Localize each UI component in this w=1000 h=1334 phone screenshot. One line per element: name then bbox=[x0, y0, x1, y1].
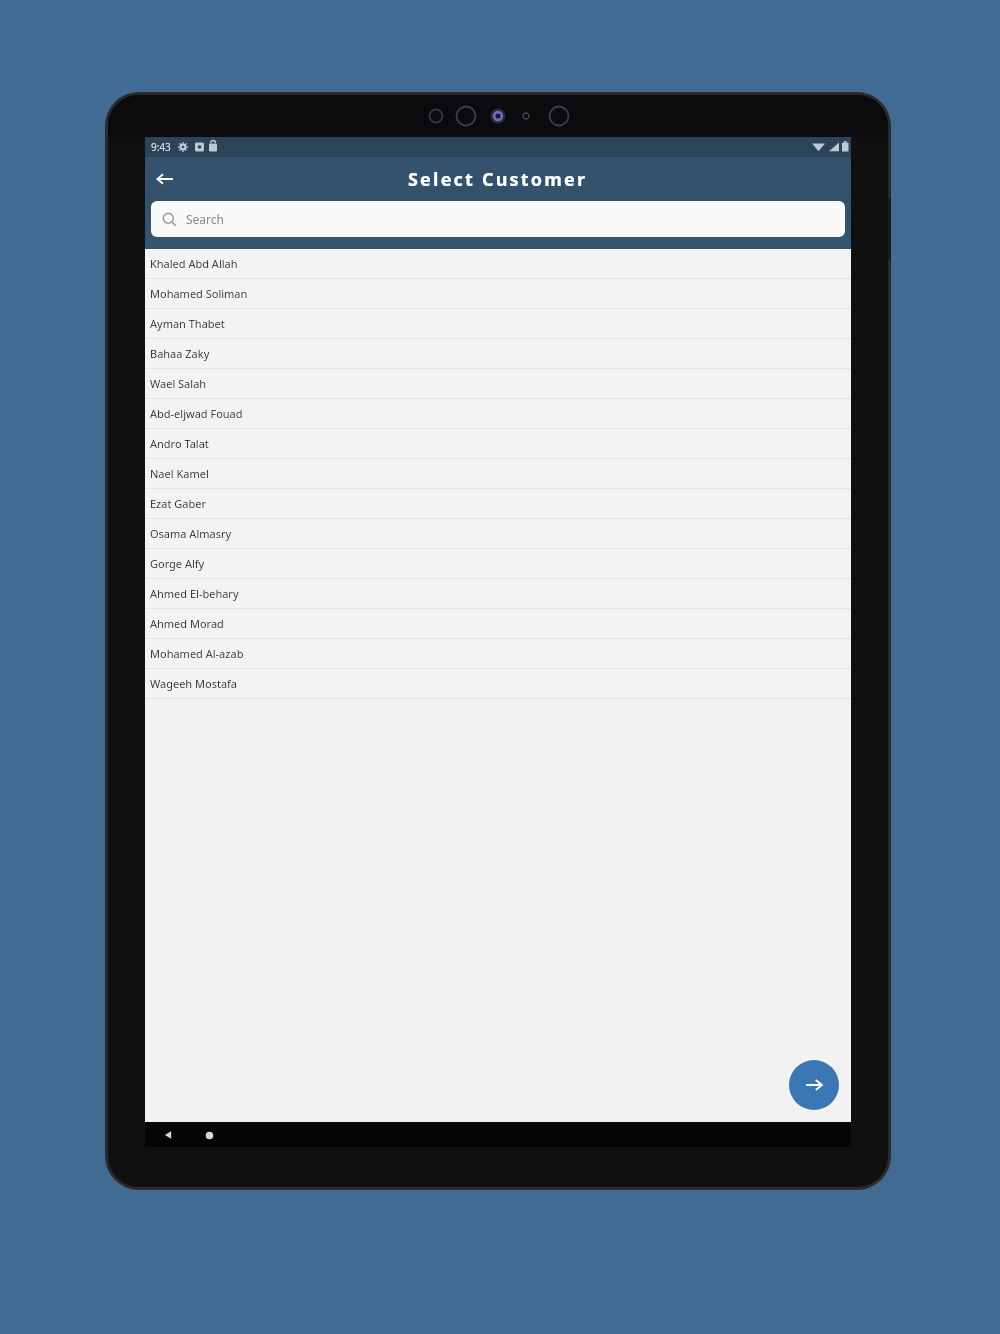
button[interactable]: Khaled Abd Allah bbox=[145, 249, 851, 278]
button[interactable]: Mohamed Soliman bbox=[145, 279, 851, 308]
button[interactable]: Ezat Gaber bbox=[145, 489, 851, 518]
button[interactable]: Abd-eljwad Fouad bbox=[145, 399, 851, 428]
staticText: Ahmed El-behary bbox=[150, 586, 239, 601]
button[interactable]: Ahmed El-behary bbox=[145, 579, 851, 608]
staticText: Nael Kamel bbox=[150, 466, 209, 481]
button[interactable]: Next bbox=[789, 1060, 839, 1110]
button[interactable]: Gorge Alfy bbox=[145, 549, 851, 578]
staticText: 9:43 bbox=[151, 140, 171, 154]
button[interactable]: Ahmed Morad bbox=[145, 609, 851, 638]
button[interactable]: Mohamed Al-azab bbox=[145, 639, 851, 668]
staticText: Wael Salah bbox=[150, 376, 207, 391]
staticText: Ahmed Morad bbox=[150, 616, 224, 631]
button[interactable]: Back bbox=[157, 1124, 179, 1146]
button[interactable]: Back bbox=[145, 159, 185, 199]
staticText: Gorge Alfy bbox=[150, 556, 205, 571]
staticText: Khaled Abd Allah bbox=[150, 256, 238, 271]
button[interactable]: Wageeh Mostafa bbox=[145, 669, 851, 698]
staticText: Mohamed Soliman bbox=[150, 286, 248, 301]
staticText: Mohamed Al-azab bbox=[150, 646, 244, 661]
staticText: Osama Almasry bbox=[150, 526, 232, 541]
staticText: Search bbox=[186, 211, 224, 227]
button[interactable]: Search bbox=[151, 201, 845, 237]
button[interactable]: Bahaa Zaky bbox=[145, 339, 851, 368]
button[interactable]: Andro Talat bbox=[145, 429, 851, 458]
staticText: Bahaa Zaky bbox=[150, 346, 210, 361]
button[interactable]: Osama Almasry bbox=[145, 519, 851, 548]
staticText: Select Customer bbox=[408, 167, 588, 192]
staticText: Wageeh Mostafa bbox=[150, 676, 238, 691]
staticText: Ayman Thabet bbox=[150, 316, 225, 331]
button[interactable]: Ayman Thabet bbox=[145, 309, 851, 338]
button[interactable]: Nael Kamel bbox=[145, 459, 851, 488]
staticText: Abd-eljwad Fouad bbox=[150, 406, 243, 421]
button[interactable]: Wael Salah bbox=[145, 369, 851, 398]
button[interactable]: Home bbox=[198, 1124, 220, 1146]
staticText: Andro Talat bbox=[150, 436, 209, 451]
staticText: Ezat Gaber bbox=[150, 496, 206, 511]
